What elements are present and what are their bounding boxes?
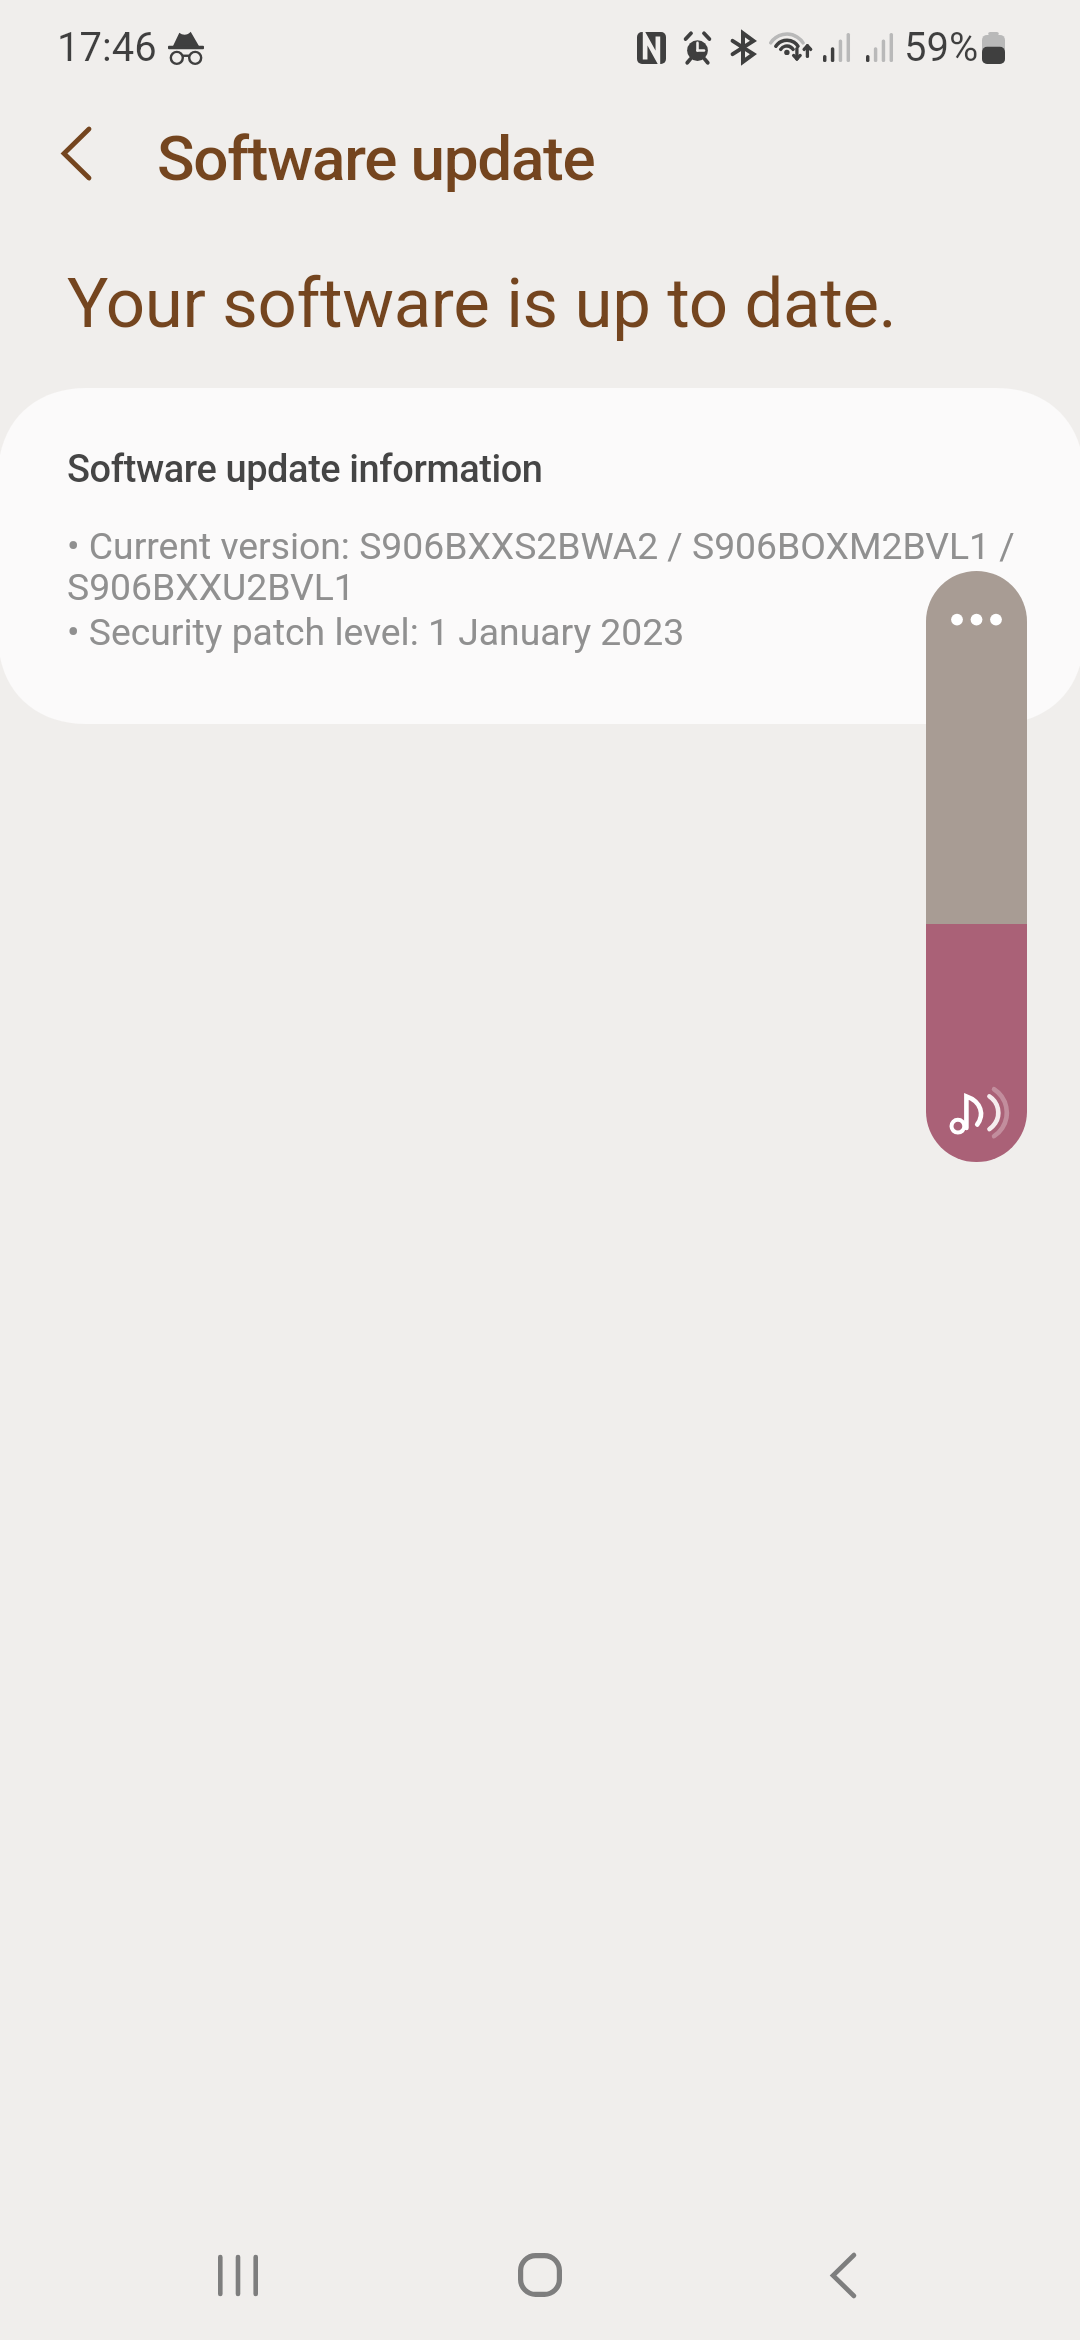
button[interactable]: Edge panel handle: [926, 571, 1027, 1162]
staticText: Your software is up to date.: [67, 263, 897, 344]
staticText: Software update: [157, 122, 595, 195]
button[interactable]: Back: [753, 2208, 933, 2340]
button[interactable]: Software update information: [0, 388, 1080, 724]
button[interactable]: Navigate up: [16, 93, 136, 213]
staticText: 17:46: [57, 24, 157, 71]
button[interactable]: Home: [450, 2208, 630, 2340]
staticText: • Current version: S906BXXS2BWA2 / S906B…: [67, 524, 1027, 610]
staticText: Software update information: [67, 447, 543, 492]
button[interactable]: Recent apps: [148, 2208, 328, 2340]
staticText: 59%: [904, 24, 979, 71]
staticText: • Security patch level: 1 January 2023: [67, 610, 685, 654]
